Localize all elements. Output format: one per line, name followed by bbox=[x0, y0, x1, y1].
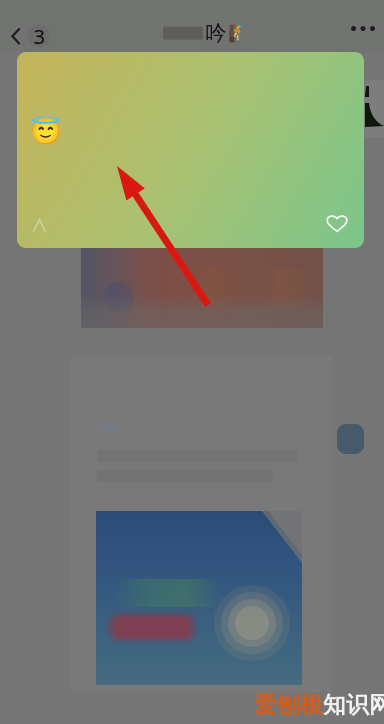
staticText: 😇 bbox=[30, 117, 62, 146]
button[interactable]: Like bbox=[326, 213, 364, 248]
button[interactable]: Back bbox=[7, 15, 54, 58]
staticText: 知识网 bbox=[323, 691, 384, 719]
staticText: 3 bbox=[33, 23, 44, 50]
button[interactable]: More bbox=[343, 18, 383, 39]
staticText: 吟 bbox=[205, 20, 226, 46]
staticText: 🧗 bbox=[228, 24, 248, 42]
staticText: 爱刨根 bbox=[254, 691, 323, 719]
